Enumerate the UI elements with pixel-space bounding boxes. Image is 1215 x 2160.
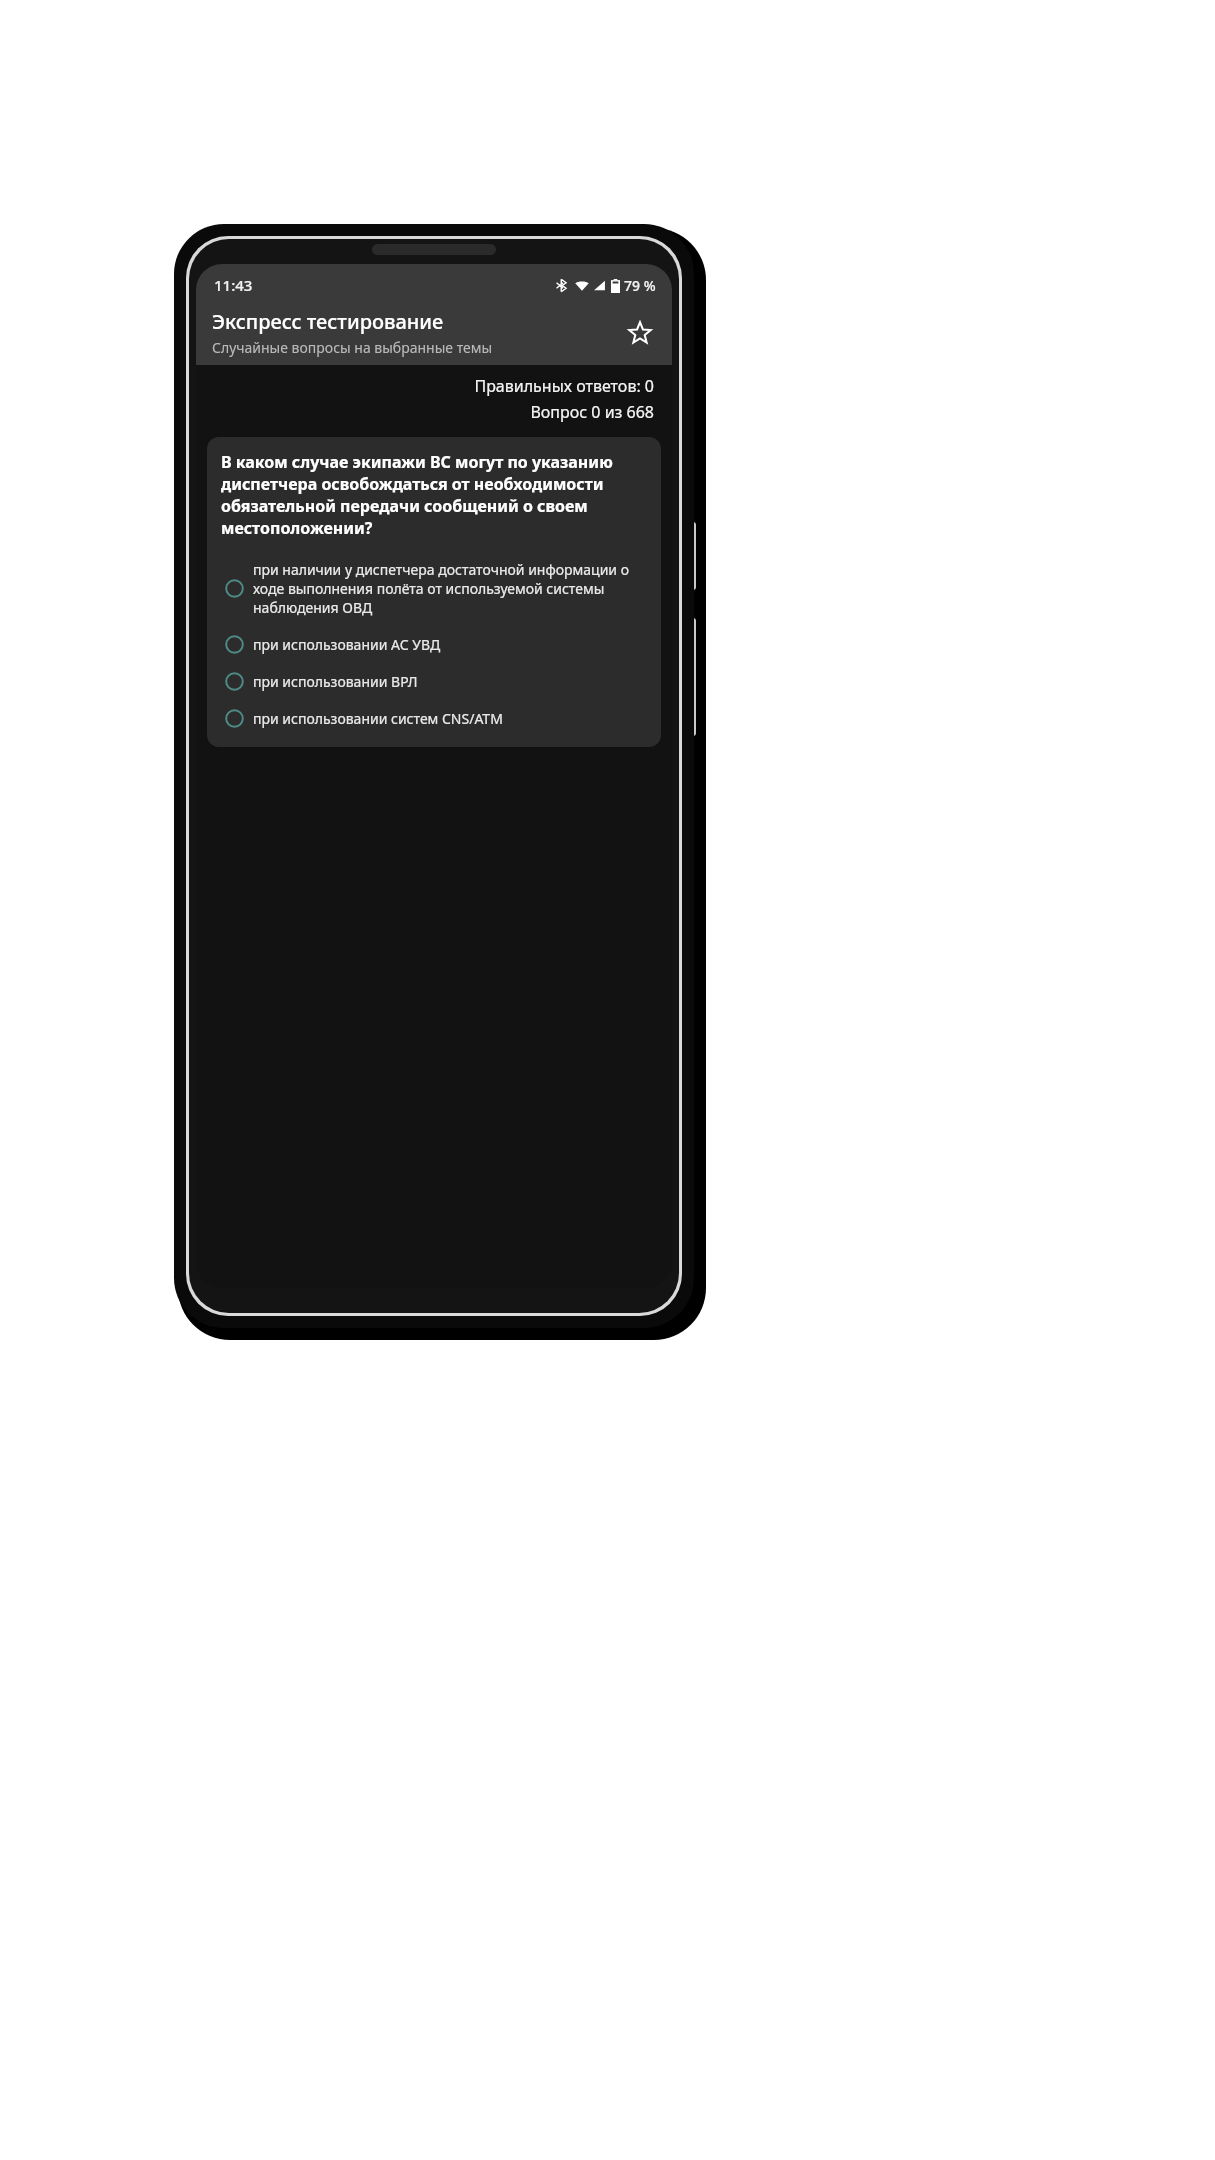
button[interactable]: при наличии у диспетчера достаточной инф… <box>221 557 647 620</box>
staticText: 11:43 <box>214 275 253 295</box>
button[interactable]: при использовании ВРЛ <box>221 669 647 694</box>
button[interactable]: при использовании АС УВД <box>221 632 647 657</box>
button[interactable]: при использовании систем CNS/ATM <box>221 706 647 731</box>
staticText: при использовании ВРЛ <box>253 672 418 691</box>
staticText: при наличии у диспетчера достаточной инф… <box>253 560 647 617</box>
staticText: Правильных ответов: 0 <box>474 375 654 397</box>
staticText: Экспресс тестирование <box>212 308 444 335</box>
button[interactable]: Добавить в избранное <box>618 311 662 355</box>
staticText: В каком случае экипажи ВС могут по указа… <box>221 451 647 539</box>
staticText: Случайные вопросы на выбранные темы <box>212 338 493 357</box>
staticText: при использовании систем CNS/ATM <box>253 709 503 728</box>
staticText: при использовании АС УВД <box>253 635 441 654</box>
staticText: Вопрос 0 из 668 <box>530 401 654 423</box>
staticText: 79 % <box>624 276 656 295</box>
